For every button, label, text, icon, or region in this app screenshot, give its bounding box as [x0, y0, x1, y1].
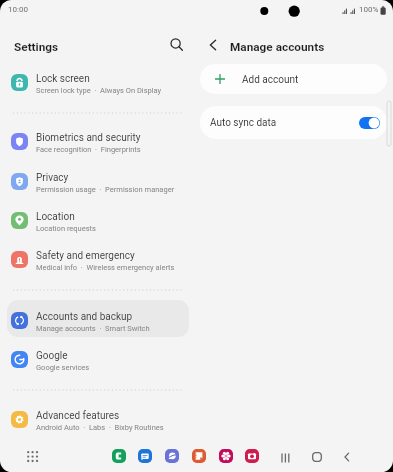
staticText: Face recognition · Fingerprints — [36, 145, 141, 154]
staticText: Advanced features — [36, 410, 120, 422]
button[interactable]: Google — [0, 342, 196, 379]
staticText: Permission usage · Permission manager — [36, 185, 175, 194]
button[interactable]: Back — [202, 34, 224, 56]
button[interactable]: Safety and emergency — [0, 242, 196, 279]
staticText: Lock screen — [36, 73, 90, 85]
button[interactable]: Camera — [245, 449, 259, 463]
staticText: Google — [36, 350, 68, 362]
staticText: Manage accounts — [230, 40, 325, 54]
button[interactable]: Privacy — [0, 164, 196, 201]
button[interactable]: Internet — [165, 449, 179, 463]
staticText: Accounts and backup — [36, 311, 133, 323]
button[interactable]: Apps — [27, 451, 38, 462]
button[interactable]: Recents — [281, 453, 291, 463]
staticText: Settings — [14, 40, 59, 54]
staticText: Safety and emergency — [36, 250, 135, 262]
button[interactable]: Back — [342, 452, 352, 462]
button[interactable]: Home — [312, 452, 322, 462]
staticText: Google services — [36, 363, 90, 372]
staticText: Location — [36, 211, 75, 223]
button[interactable]: Location — [0, 203, 196, 240]
button[interactable]: Add account — [200, 64, 387, 94]
button[interactable]: Notes — [192, 449, 206, 463]
button[interactable]: Accounts and backup — [0, 303, 196, 340]
button[interactable]: Messages — [138, 449, 152, 463]
staticText: Location requests — [36, 224, 96, 233]
button[interactable]: Auto sync data — [200, 106, 387, 139]
staticText: Screen lock type · Always On Display — [36, 86, 162, 95]
staticText: Manage accounts · Smart Switch — [36, 324, 150, 333]
staticText: 100% — [359, 5, 379, 14]
staticText: Add account — [242, 74, 299, 86]
button[interactable]: Search — [166, 34, 188, 56]
staticText: Medical info · Wireless emergency alerts — [36, 263, 175, 272]
button[interactable]: Biometrics and security — [0, 124, 196, 161]
staticText: Biometrics and security — [36, 132, 141, 144]
staticText: Android Auto · Labs · Bixby Routines — [36, 423, 164, 432]
staticText: Auto sync data — [210, 117, 277, 129]
button[interactable]: Lock screen — [0, 65, 196, 102]
button[interactable]: Phone — [112, 449, 126, 463]
button[interactable]: Gallery — [219, 449, 233, 463]
staticText: Privacy — [36, 172, 69, 184]
staticText: 10:00 — [8, 5, 28, 14]
button[interactable]: Advanced features — [0, 402, 196, 439]
